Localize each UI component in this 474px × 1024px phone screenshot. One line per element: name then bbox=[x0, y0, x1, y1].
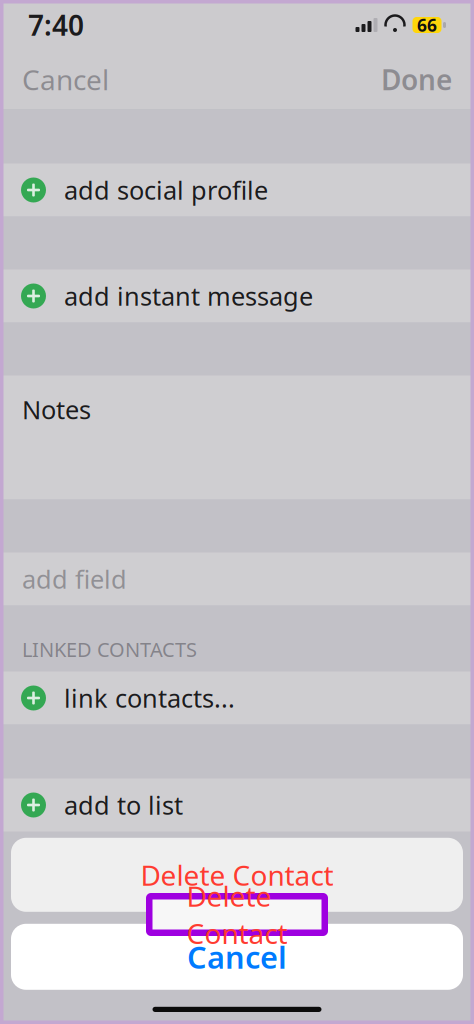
button[interactable]: Delete Contact bbox=[11, 838, 463, 912]
button[interactable]: Cancel bbox=[11, 924, 463, 990]
staticText: add field bbox=[22, 562, 127, 596]
button[interactable]: add instant message bbox=[0, 269, 474, 322]
button[interactable]: add to list bbox=[0, 778, 474, 831]
staticText: Delete Contact bbox=[140, 856, 333, 893]
button[interactable]: add social profile bbox=[0, 163, 474, 216]
button[interactable]: Done bbox=[377, 53, 456, 106]
staticText: link contacts... bbox=[64, 681, 235, 715]
staticText: Done bbox=[381, 61, 452, 98]
staticText: add instant message bbox=[64, 279, 313, 313]
button[interactable]: Notes bbox=[0, 375, 474, 499]
staticText: Delete Contact bbox=[186, 877, 287, 952]
staticText: LINKED CONTACTS bbox=[22, 636, 197, 662]
staticText: Notes bbox=[22, 392, 91, 426]
button[interactable]: add field bbox=[0, 552, 474, 605]
button[interactable]: link contacts... bbox=[0, 671, 474, 724]
staticText: Cancel bbox=[187, 936, 287, 977]
staticText: 66 bbox=[417, 13, 437, 36]
staticText: add social profile bbox=[64, 173, 268, 207]
staticText: add to list bbox=[64, 788, 183, 822]
staticText: Cancel bbox=[22, 61, 109, 98]
staticText: 7:40 bbox=[28, 6, 84, 44]
button[interactable]: Cancel bbox=[18, 53, 113, 106]
